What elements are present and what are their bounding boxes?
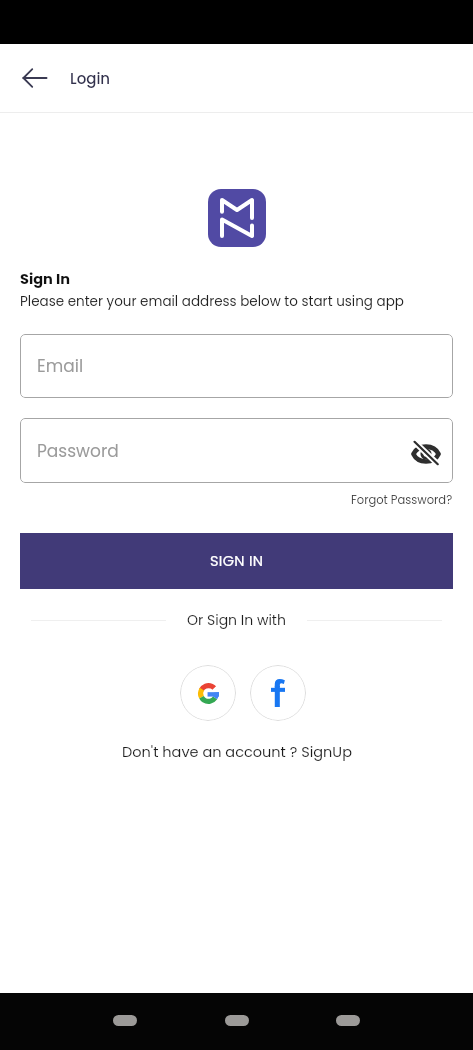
button[interactable]: Don't have an account ? SignUp — [122, 742, 352, 762]
button[interactable]: Email — [20, 334, 453, 398]
button[interactable]: Sign in with Google — [180, 665, 236, 721]
staticText: Please enter your email address below to… — [20, 292, 404, 311]
button[interactable]: SIGN IN — [20, 533, 453, 589]
button[interactable]: Back — [113, 1015, 137, 1026]
button[interactable]: Show password — [407, 434, 445, 472]
button[interactable]: Home — [225, 1015, 249, 1026]
staticText: SIGN IN — [210, 551, 264, 571]
staticText: Email — [37, 354, 84, 378]
button[interactable]: Recents — [336, 1015, 360, 1026]
button[interactable]: Back — [11, 54, 59, 102]
staticText: Sign In — [20, 269, 70, 289]
button[interactable]: Forgot Password? — [351, 492, 453, 508]
staticText: Or Sign In with — [187, 610, 286, 630]
button[interactable]: Password — [20, 418, 453, 483]
staticText: Login — [70, 68, 111, 89]
button[interactable]: Sign in with Facebook — [250, 665, 306, 721]
staticText: Password — [37, 439, 119, 463]
